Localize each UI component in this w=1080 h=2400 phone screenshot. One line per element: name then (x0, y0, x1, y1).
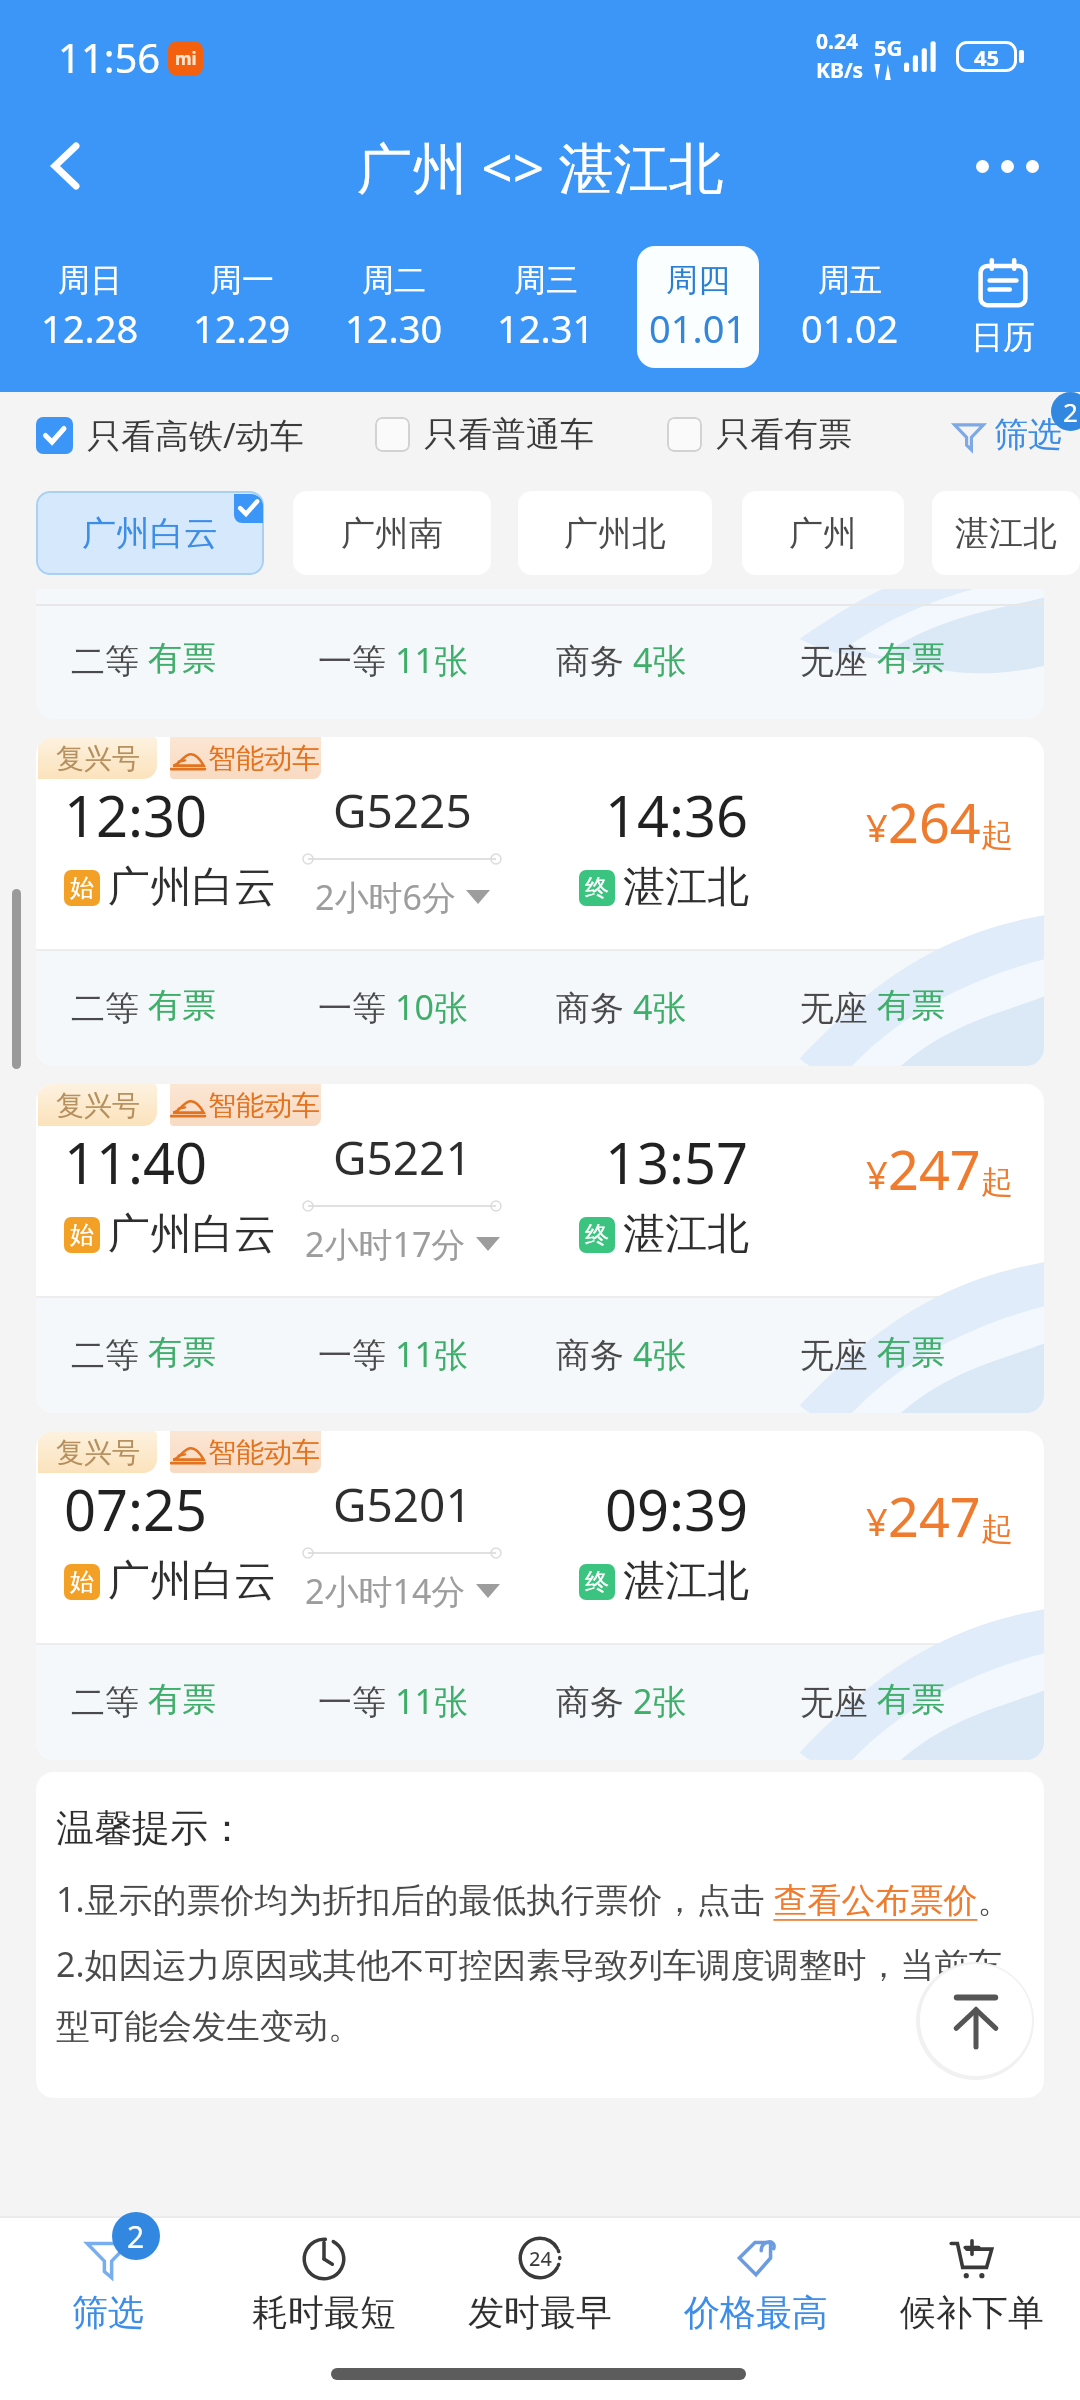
staticText: 11张 (395, 637, 468, 683)
staticText: 12.31 (497, 302, 595, 354)
staticText: 10张 (395, 984, 468, 1030)
staticText: 45 (974, 42, 1000, 72)
staticText: 有票 (877, 1331, 945, 1374)
staticText: 4张 (633, 1331, 687, 1377)
button[interactable]: 2 (0, 2218, 216, 2348)
staticText: 终 (585, 1220, 609, 1250)
staticText: 12.29 (193, 302, 291, 354)
staticText: 有票 (877, 1678, 945, 1721)
button[interactable]: 候补下单 (864, 2218, 1080, 2348)
staticText: 无座 (800, 1678, 877, 1724)
staticText: 周四 (666, 260, 730, 300)
button[interactable]: 湛江北 (932, 491, 1080, 575)
staticText: ¥ (866, 801, 888, 853)
staticText: 247 (888, 1132, 981, 1206)
staticText: 13:57 (605, 1124, 749, 1200)
button[interactable]: 周一 (181, 246, 303, 368)
staticText: 广州白云 (108, 861, 276, 914)
staticText: mi (175, 47, 197, 70)
button[interactable]: 二等 (36, 589, 1044, 719)
staticText: G5225 (333, 779, 472, 842)
staticText: 二等 (71, 1331, 148, 1377)
staticText: 2小时6分 (315, 874, 456, 920)
staticText: 商务 (556, 1678, 633, 1724)
staticText: 湛江北 (623, 1555, 749, 1608)
staticText: 周三 (514, 260, 578, 300)
staticText: KB/s (816, 56, 864, 85)
staticText: 二等 (71, 984, 148, 1030)
button[interactable]: 周二 (333, 246, 455, 368)
staticText: 商务 (556, 984, 633, 1030)
button[interactable]: 周四 (637, 246, 759, 368)
staticText: 复兴号 (56, 741, 140, 776)
staticText: 发时最早 (468, 2290, 612, 2335)
staticText: 1.显示的票价均为折扣后的最低执行票价，点击 查看公布票价。 2.如因运力原因或… (56, 1876, 1018, 2048)
staticText: 一等 (318, 1331, 395, 1377)
button[interactable]: 广州 (742, 491, 904, 575)
staticText: 0.24 (816, 27, 858, 56)
button[interactable]: 价格最高 (648, 2218, 864, 2348)
button[interactable]: 广州南 (293, 491, 491, 575)
staticText: 耗时最短 (252, 2290, 396, 2335)
staticText: 无座 (800, 984, 877, 1030)
staticText: 广州白云 (82, 512, 218, 555)
staticText: 始 (70, 873, 94, 903)
staticText: 有票 (877, 637, 945, 680)
staticText: 始 (70, 1220, 94, 1250)
button[interactable]: 耗时最短 (216, 2218, 432, 2348)
button[interactable]: 复兴号 (36, 737, 1044, 1066)
button[interactable]: 只看有票 (667, 413, 852, 456)
staticText: 候补下单 (900, 2290, 1044, 2335)
button[interactable]: 广州北 (518, 491, 712, 575)
staticText: 复兴号 (56, 1088, 140, 1123)
button[interactable]: More options (962, 130, 1052, 202)
staticText: 起 (981, 815, 1013, 855)
staticText: 4张 (633, 984, 687, 1030)
staticText: 2 (127, 2216, 145, 2257)
button[interactable]: Calendar (926, 222, 1080, 392)
staticText: 有票 (148, 1331, 216, 1374)
staticText: 4张 (633, 637, 687, 683)
staticText: 周一 (210, 260, 274, 300)
staticText: 有票 (148, 1678, 216, 1721)
button[interactable]: Back (30, 130, 102, 202)
staticText: 智能动车 (208, 1435, 320, 1470)
button[interactable]: 复兴号 (36, 1431, 1044, 1760)
staticText: 12:30 (64, 777, 208, 853)
staticText: 14:36 (605, 777, 749, 853)
button[interactable]: 复兴号 (36, 1084, 1044, 1413)
staticText: 一等 (318, 1678, 395, 1724)
staticText: 一等 (318, 984, 395, 1030)
staticText: 有票 (148, 984, 216, 1027)
staticText: 起 (981, 1162, 1013, 1202)
staticText: 2 (1063, 394, 1078, 429)
staticText: 24 (529, 2245, 552, 2272)
button[interactable]: 24 (432, 2218, 648, 2348)
staticText: 广州北 (564, 512, 666, 555)
staticText: 11:40 (64, 1124, 208, 1200)
staticText: 247 (888, 1479, 981, 1553)
button[interactable]: 筛选 (954, 413, 1080, 456)
staticText: 2小时14分 (305, 1568, 466, 1614)
staticText: 终 (585, 1567, 609, 1597)
staticText: 09:39 (605, 1471, 749, 1547)
staticText: 周日 (58, 260, 122, 300)
staticText: 无座 (800, 637, 877, 683)
staticText: 一等 (318, 637, 395, 683)
button[interactable]: Scroll to top (920, 1964, 1032, 2076)
staticText: 起 (981, 1509, 1013, 1549)
staticText: 智能动车 (208, 741, 320, 776)
staticText: 湛江北 (623, 861, 749, 914)
staticText: 湛江北 (623, 1208, 749, 1261)
staticText: 广州 (789, 512, 857, 555)
button[interactable]: 周三 (485, 246, 607, 368)
button[interactable]: 周日 (29, 246, 151, 368)
button[interactable]: 只看高铁/动车 (36, 412, 304, 458)
staticText: 5G (874, 32, 903, 62)
staticText: 二等 (71, 637, 148, 683)
staticText: G5201 (333, 1473, 472, 1536)
staticText: ¥ (866, 1495, 888, 1547)
button[interactable]: 广州白云 (36, 491, 264, 575)
button[interactable]: 周五 (789, 246, 911, 368)
button[interactable]: 只看普通车 (375, 413, 594, 456)
